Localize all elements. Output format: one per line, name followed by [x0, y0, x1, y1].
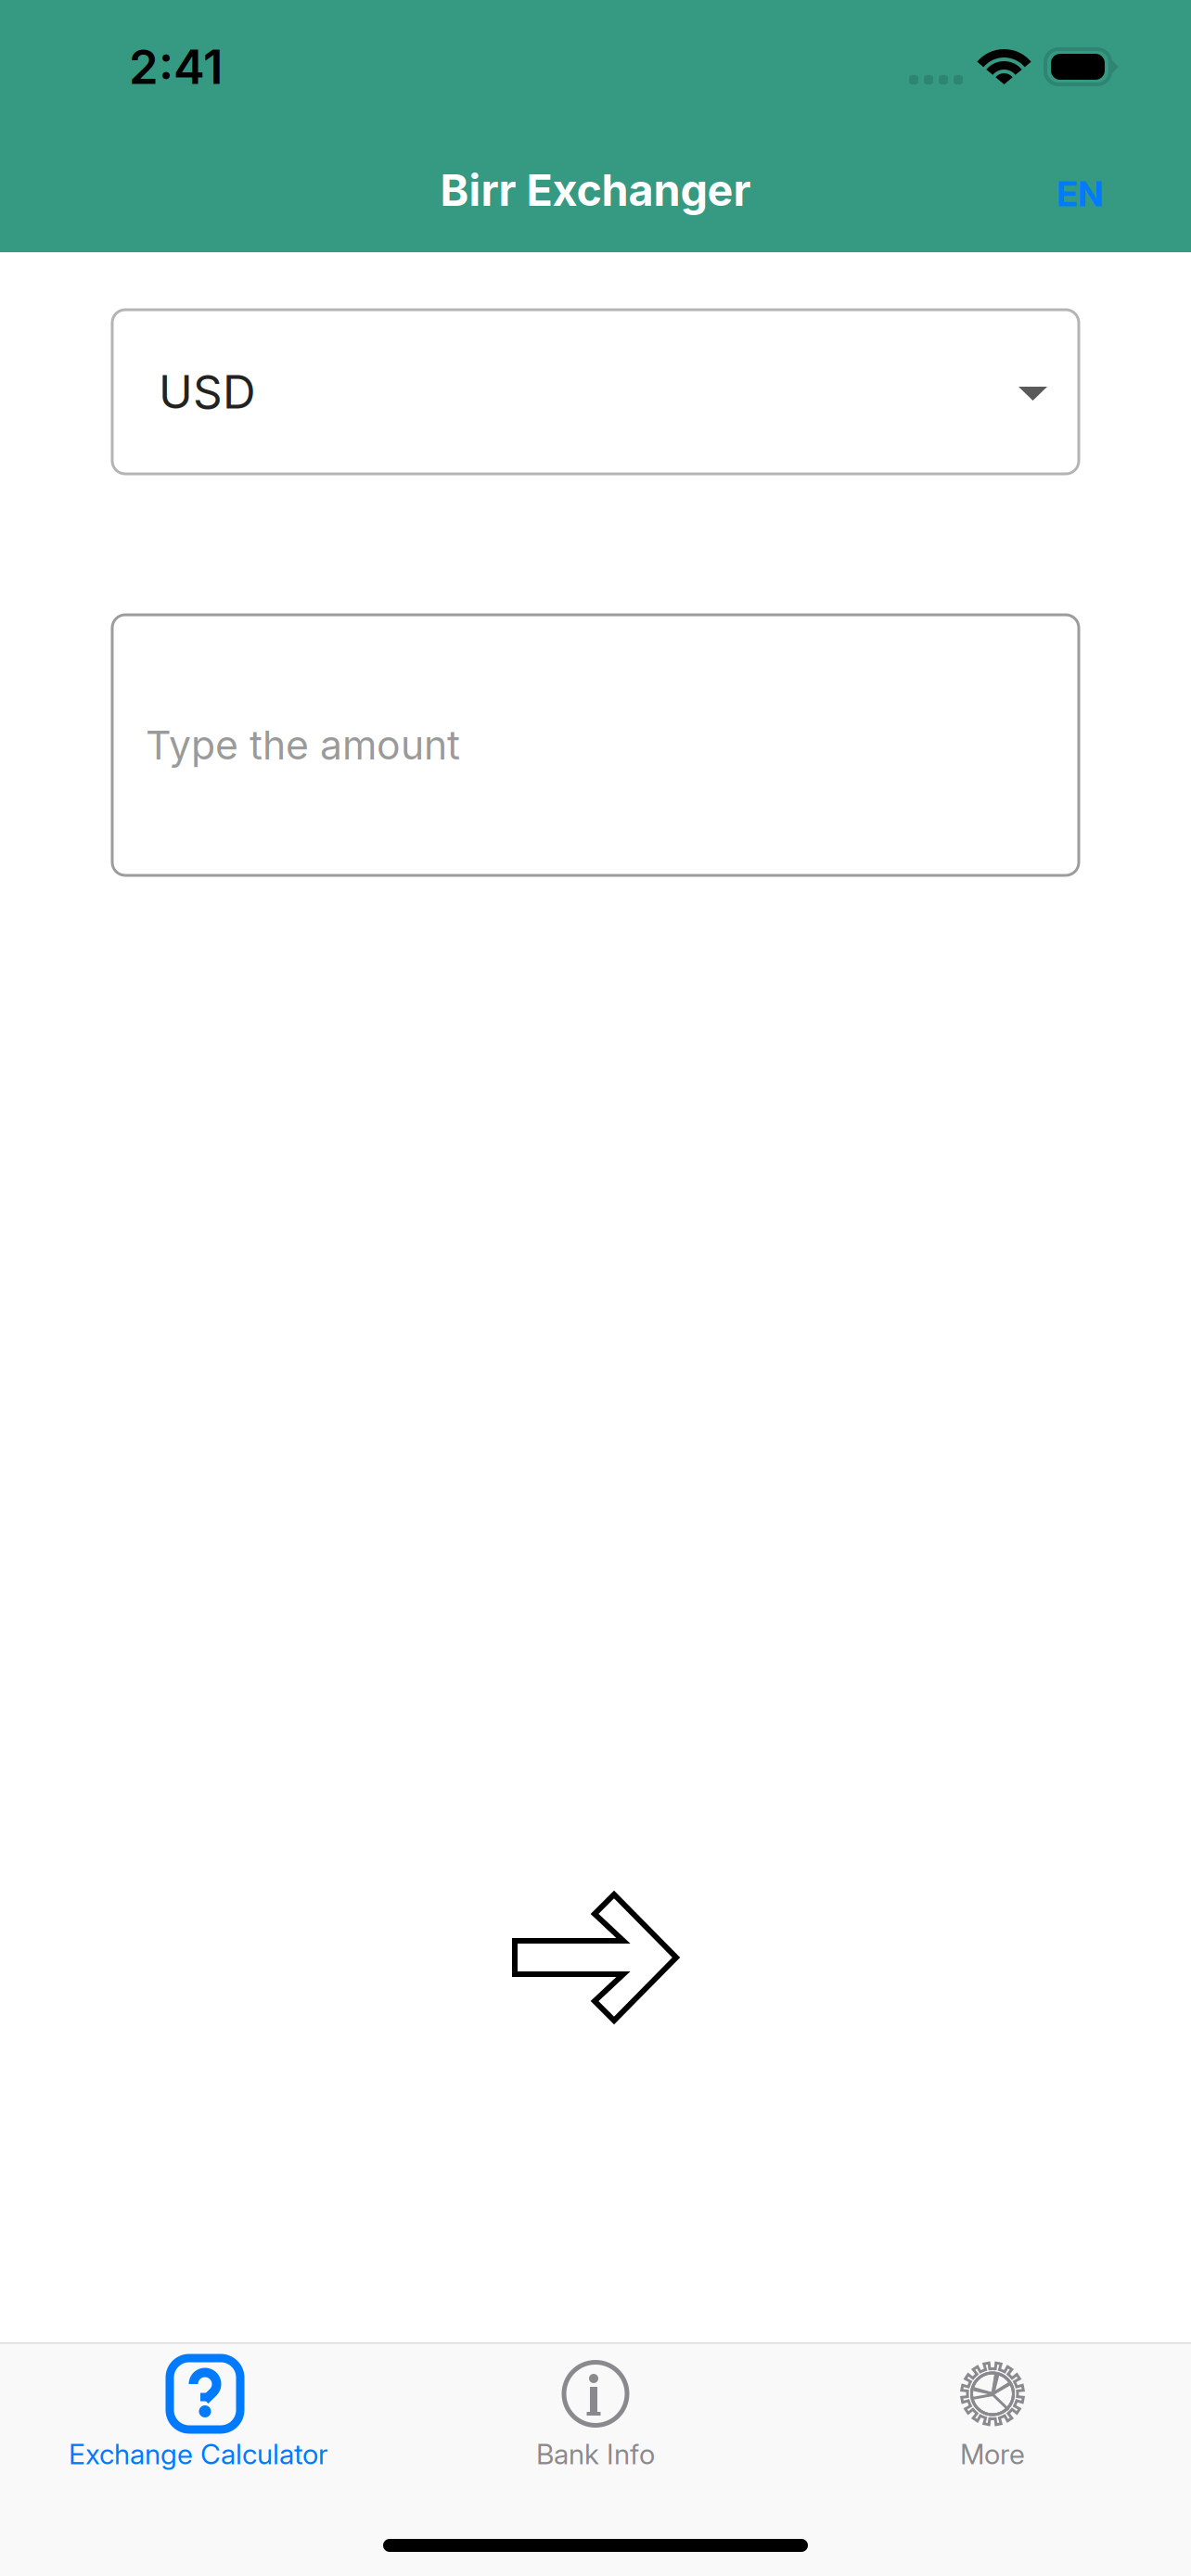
- staticText: 2:41: [129, 38, 223, 95]
- button[interactable]: Exchange Calculator: [0, 2344, 397, 2486]
- button[interactable]: USD: [112, 310, 1079, 474]
- staticText: USD: [159, 364, 256, 420]
- staticText: EN: [1057, 173, 1103, 215]
- button[interactable]: Type the amount: [112, 615, 1079, 875]
- button[interactable]: More: [794, 2344, 1191, 2486]
- button[interactable]: EN: [1034, 151, 1125, 237]
- staticText: Birr Exchanger: [440, 164, 751, 216]
- staticText: Type the amount: [146, 721, 460, 769]
- staticText: Exchange Calculator: [69, 2437, 328, 2471]
- button[interactable]: Bank Info: [397, 2344, 794, 2486]
- staticText: Bank Info: [536, 2437, 655, 2471]
- staticText: More: [960, 2437, 1025, 2471]
